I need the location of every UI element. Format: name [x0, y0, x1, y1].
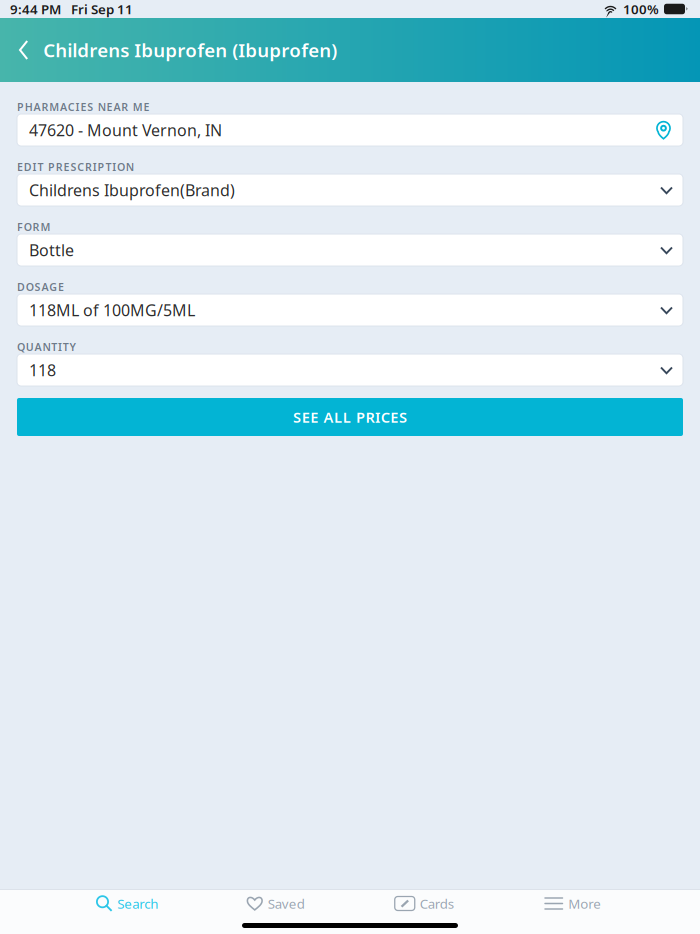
staticText: Search: [117, 895, 158, 912]
staticText: 100%: [623, 0, 659, 18]
button[interactable]: More: [498, 890, 647, 917]
button[interactable]: 118: [17, 354, 683, 386]
staticText: 9:44 PM: [10, 0, 61, 18]
staticText: 118ML of 100MG/5ML: [29, 299, 195, 321]
staticText: Cards: [420, 895, 454, 912]
staticText: Childrens Ibuprofen(Brand): [29, 179, 235, 201]
button[interactable]: Search: [53, 890, 201, 917]
staticText: More: [568, 895, 601, 912]
staticText: Fri Sep 11: [71, 0, 133, 18]
staticText: PHARMACIES NEAR ME: [17, 100, 150, 114]
button[interactable]: 118ML of 100MG/5ML: [17, 294, 683, 326]
button[interactable]: Childrens Ibuprofen(Brand): [17, 174, 683, 206]
staticText: Saved: [268, 895, 305, 912]
button[interactable]: Saved: [201, 890, 350, 917]
staticText: Bottle: [29, 239, 74, 261]
staticText: 118: [29, 359, 56, 381]
button[interactable]: SEE ALL PRICES: [17, 398, 683, 436]
button[interactable]: Cards: [350, 890, 498, 917]
staticText: QUANTITY: [17, 340, 76, 354]
button[interactable]: Bottle: [17, 234, 683, 266]
staticText: Childrens Ibuprofen (Ibuprofen): [43, 38, 337, 62]
button[interactable]: Back: [12, 18, 35, 82]
staticText: 47620 - Mount Vernon, IN: [29, 119, 222, 141]
staticText: SEE ALL PRICES: [293, 407, 407, 427]
staticText: FORM: [17, 220, 50, 234]
button[interactable]: 47620 - Mount Vernon, IN: [17, 114, 683, 146]
staticText: DOSAGE: [17, 280, 64, 294]
staticText: EDIT PRESCRIPTION: [17, 160, 134, 174]
